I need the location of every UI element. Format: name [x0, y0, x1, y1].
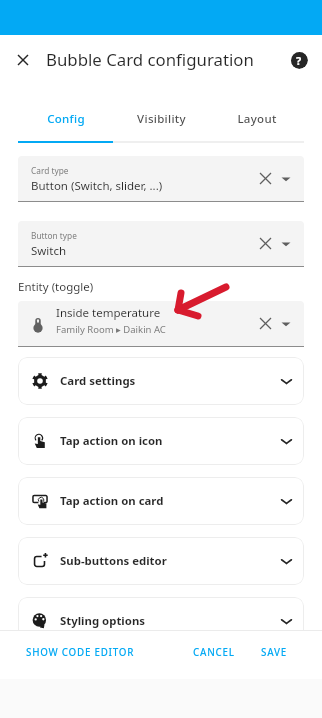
button[interactable]: Card type — [18, 156, 304, 201]
staticText: ? — [296, 53, 302, 68]
staticText: Entity (toggle) — [18, 279, 94, 295]
button[interactable]: Visibility — [114, 84, 209, 143]
button[interactable]: Close — [10, 47, 36, 73]
staticText: SHOW CODE EDITOR — [26, 646, 135, 659]
staticText: Switch — [31, 243, 67, 259]
button[interactable]: Layout — [209, 84, 304, 143]
staticText: Sub-buttons editor — [60, 553, 167, 569]
staticText: Button (Switch, slider, ...) — [31, 178, 163, 194]
staticText: Button type — [31, 230, 77, 241]
button[interactable]: SAVE — [253, 639, 295, 666]
staticText: Tap action on card — [60, 493, 164, 509]
staticText: SAVE — [261, 646, 287, 659]
button[interactable]: CANCEL — [185, 639, 243, 666]
staticText: Styling options — [60, 613, 145, 629]
staticText: Card settings — [60, 373, 136, 389]
button[interactable]: Help — [290, 51, 308, 69]
staticText: Card type — [31, 165, 69, 176]
staticText: CANCEL — [193, 646, 235, 659]
button[interactable]: SHOW CODE EDITOR — [18, 639, 143, 666]
button[interactable]: Config — [18, 84, 114, 143]
staticText: Inside temperature — [56, 305, 161, 321]
staticText: Bubble Card configuration — [46, 48, 254, 71]
button[interactable]: Card settings — [18, 357, 304, 405]
staticText: Family Room ▸ Daikin AC — [56, 323, 166, 336]
button[interactable]: Sub-buttons editor — [18, 537, 304, 585]
staticText: Visibility — [137, 111, 186, 127]
button[interactable]: Button type — [18, 221, 304, 266]
button[interactable]: Styling options — [18, 597, 304, 645]
button[interactable]: Tap action on card — [18, 477, 304, 525]
button[interactable]: Inside temperature — [18, 301, 304, 346]
staticText: Layout — [237, 111, 277, 127]
staticText: Tap action on icon — [60, 433, 163, 449]
staticText: Config — [47, 111, 85, 127]
button[interactable]: Tap action on icon — [18, 417, 304, 465]
